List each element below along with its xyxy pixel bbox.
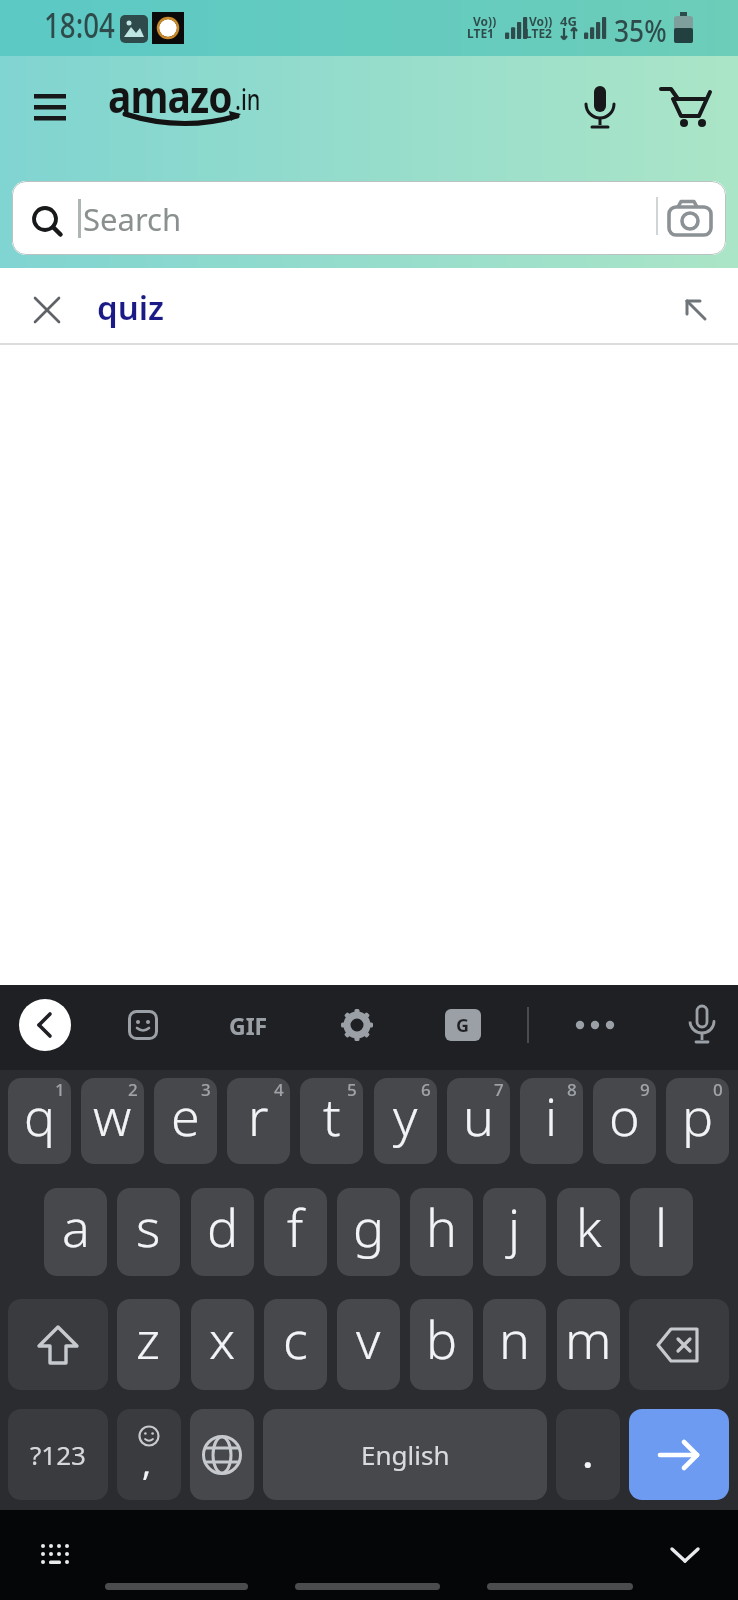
- staticText: r: [248, 1080, 269, 1151]
- button[interactable]: English: [263, 1409, 547, 1500]
- button[interactable]: quiz: [0, 268, 738, 345]
- staticText: G: [456, 1013, 470, 1038]
- staticText: o: [609, 1080, 640, 1151]
- button[interactable]: m: [557, 1299, 620, 1390]
- button[interactable]: a: [44, 1188, 107, 1276]
- button[interactable]: q: [8, 1078, 71, 1164]
- button[interactable]: [8, 1299, 108, 1390]
- staticText: c: [283, 1303, 308, 1374]
- button[interactable]: i: [520, 1078, 583, 1164]
- staticText: b: [426, 1303, 458, 1374]
- button[interactable]: j: [483, 1188, 546, 1276]
- button[interactable]: [570, 1000, 620, 1050]
- staticText: 35%: [614, 9, 667, 51]
- staticText: j: [508, 1191, 521, 1262]
- button[interactable]: z: [117, 1299, 180, 1390]
- button[interactable]: h: [410, 1188, 473, 1276]
- staticText: 1: [55, 1078, 65, 1101]
- staticText: amazon: [108, 66, 250, 138]
- staticText: GIF: [229, 1010, 268, 1041]
- button[interactable]: [19, 999, 71, 1051]
- button[interactable]: p: [666, 1078, 729, 1164]
- button[interactable]: y: [374, 1078, 437, 1164]
- button[interactable]: e: [154, 1078, 217, 1164]
- staticText: LTE1: [467, 25, 494, 41]
- staticText: Vo)): [529, 13, 553, 29]
- staticText: .in: [235, 79, 260, 118]
- button[interactable]: k: [557, 1188, 620, 1276]
- staticText: t: [323, 1080, 341, 1151]
- button[interactable]: [629, 1299, 729, 1390]
- staticText: quiz: [97, 285, 165, 330]
- button[interactable]: o: [593, 1078, 656, 1164]
- staticText: u: [463, 1080, 494, 1151]
- staticText: 9: [640, 1078, 650, 1101]
- button[interactable]: v: [337, 1299, 400, 1390]
- button[interactable]: [25, 1530, 85, 1580]
- button[interactable]: g: [337, 1188, 400, 1276]
- button[interactable]: [652, 76, 722, 136]
- button[interactable]: [655, 1530, 715, 1580]
- staticText: a: [62, 1191, 90, 1262]
- staticText: 0: [713, 1078, 723, 1101]
- staticText: 2: [128, 1078, 138, 1101]
- staticText: h: [426, 1191, 457, 1262]
- staticText: 4G: [560, 12, 577, 30]
- staticText: 5: [347, 1078, 357, 1101]
- button[interactable]: .: [556, 1409, 620, 1500]
- button[interactable]: n: [483, 1299, 546, 1390]
- button[interactable]: [332, 1000, 382, 1050]
- staticText: Search: [83, 198, 182, 240]
- button[interactable]: [118, 1000, 168, 1050]
- button[interactable]: b: [410, 1299, 473, 1390]
- staticText: v: [356, 1303, 381, 1374]
- staticText: 7: [494, 1078, 504, 1101]
- staticText: w: [93, 1080, 132, 1151]
- staticText: y: [393, 1080, 418, 1151]
- button[interactable]: amazon: [108, 66, 268, 138]
- staticText: k: [576, 1191, 602, 1262]
- staticText: p: [682, 1080, 714, 1151]
- button[interactable]: f: [264, 1188, 327, 1276]
- button[interactable]: s: [117, 1188, 180, 1276]
- staticText: x: [209, 1303, 236, 1374]
- button[interactable]: x: [191, 1299, 254, 1390]
- staticText: 8: [567, 1078, 577, 1101]
- button[interactable]: GIF: [215, 1000, 281, 1050]
- button[interactable]: r: [227, 1078, 290, 1164]
- button[interactable]: [629, 1409, 729, 1500]
- button[interactable]: [662, 193, 718, 243]
- staticText: 3: [201, 1078, 211, 1101]
- button[interactable]: l: [630, 1188, 693, 1276]
- staticText: 18:04: [44, 1, 115, 49]
- staticText: l: [655, 1191, 668, 1262]
- button[interactable]: G: [438, 1000, 488, 1050]
- staticText: 4: [274, 1078, 284, 1101]
- button[interactable]: [190, 1409, 254, 1500]
- button[interactable]: [20, 78, 80, 138]
- staticText: ?123: [30, 1437, 86, 1472]
- staticText: i: [545, 1080, 558, 1151]
- staticText: z: [136, 1303, 161, 1374]
- button[interactable]: ,: [117, 1409, 181, 1500]
- button[interactable]: [570, 76, 630, 140]
- staticText: f: [287, 1191, 304, 1262]
- button[interactable]: w: [81, 1078, 144, 1164]
- button[interactable]: u: [447, 1078, 510, 1164]
- button[interactable]: ?123: [8, 1409, 108, 1500]
- staticText: 6: [421, 1078, 431, 1101]
- button[interactable]: [677, 1000, 727, 1050]
- staticText: m: [565, 1303, 612, 1374]
- staticText: q: [24, 1080, 56, 1151]
- button[interactable]: t: [300, 1078, 363, 1164]
- staticText: Vo)): [473, 13, 497, 29]
- staticText: s: [136, 1191, 161, 1262]
- staticText: ,: [142, 1440, 152, 1486]
- staticText: LTE2: [525, 25, 552, 41]
- staticText: g: [353, 1191, 385, 1262]
- button[interactable]: d: [191, 1188, 254, 1276]
- button[interactable]: Search: [12, 181, 726, 255]
- staticText: e: [171, 1080, 200, 1151]
- button[interactable]: c: [264, 1299, 327, 1390]
- staticText: n: [499, 1303, 530, 1374]
